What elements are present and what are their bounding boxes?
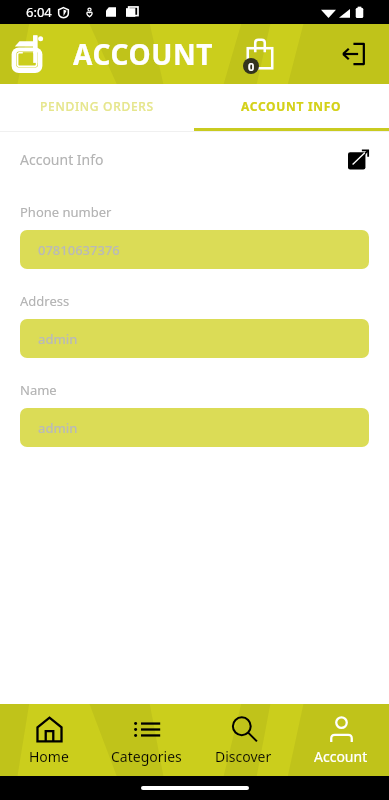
button[interactable]: Categories [98, 704, 195, 776]
button[interactable]: PENDING ORDERS [0, 84, 194, 128]
button[interactable]: ACCOUNT INFO [194, 84, 389, 128]
staticText: admin [38, 419, 78, 437]
staticText: ACCOUNT [73, 35, 214, 73]
button[interactable]: App logo [9, 29, 45, 79]
staticText: Discover [215, 747, 272, 766]
staticText: Categories [111, 747, 182, 766]
button[interactable]: Home [0, 704, 98, 776]
staticText: 6:04 [26, 3, 52, 21]
staticText: Name [20, 381, 57, 399]
button[interactable]: 07810637376 [20, 230, 369, 269]
staticText: PENDING ORDERS [40, 98, 154, 114]
staticText: 0 [248, 59, 255, 74]
staticText: ACCOUNT INFO [241, 98, 342, 114]
button[interactable]: Edit account info [341, 145, 369, 173]
staticText: Home [29, 747, 69, 766]
staticText: Account Info [20, 150, 104, 169]
staticText: Account [314, 747, 368, 766]
staticText: 07810637376 [38, 241, 120, 259]
button[interactable]: Account [292, 704, 389, 776]
button[interactable]: admin [20, 319, 369, 358]
staticText: Phone number [20, 203, 112, 221]
staticText: Address [20, 292, 70, 310]
button[interactable]: Cart [238, 32, 282, 76]
button[interactable]: admin [20, 408, 369, 447]
button[interactable]: Logout [335, 34, 375, 74]
staticText: admin [38, 330, 78, 348]
button[interactable]: Discover [195, 704, 292, 776]
